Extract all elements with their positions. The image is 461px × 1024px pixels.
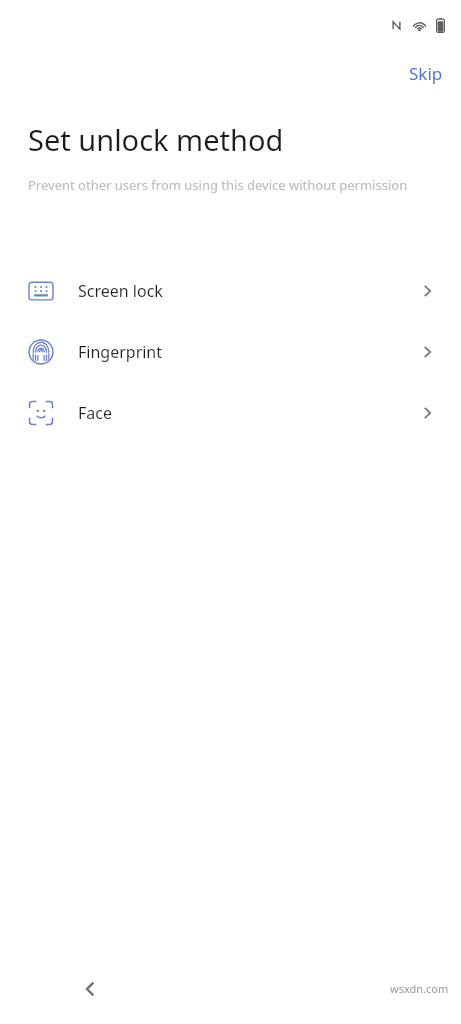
- button[interactable]: Fingerprint: [0, 321, 461, 382]
- staticText: Skip: [409, 62, 443, 85]
- button[interactable]: Skip: [391, 54, 461, 93]
- staticText: Prevent other users from using this devi…: [28, 176, 408, 194]
- button[interactable]: Screen lock: [0, 260, 461, 321]
- staticText: Screen lock: [78, 280, 163, 302]
- staticText: wsxdn.com: [390, 981, 449, 996]
- staticText: Set unlock method: [28, 120, 284, 159]
- button[interactable]: Back: [74, 972, 108, 1006]
- button[interactable]: Face: [0, 382, 461, 443]
- staticText: Fingerprint: [78, 341, 163, 363]
- staticText: Face: [78, 402, 112, 424]
